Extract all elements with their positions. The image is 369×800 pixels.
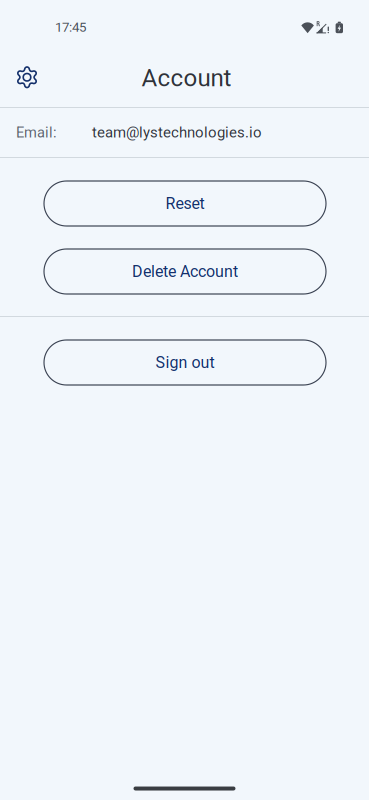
- button[interactable]: Settings: [7, 55, 47, 99]
- staticText: Delete Account: [132, 262, 238, 281]
- button[interactable]: Delete Account: [44, 249, 326, 294]
- button[interactable]: Reset: [44, 181, 326, 226]
- button[interactable]: Sign out: [44, 340, 326, 385]
- staticText: Email:: [16, 124, 57, 141]
- staticText: team@lystechnologies.io: [92, 124, 262, 141]
- staticText: 17:45: [55, 19, 86, 35]
- staticText: Sign out: [155, 353, 214, 372]
- staticText: Reset: [165, 194, 204, 213]
- staticText: Account: [141, 64, 231, 92]
